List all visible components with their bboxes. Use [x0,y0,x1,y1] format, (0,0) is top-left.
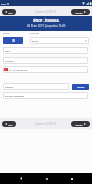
staticText: İsim [5,49,10,52]
button[interactable]: T.C. Kimlik No [3,66,88,73]
staticText: Soyisim [5,59,14,62]
staticText: 3:24 [1,2,6,5]
staticText: 28 [12,39,15,43]
staticText: Toplam: 120,00 TL [35,122,57,125]
staticText: Koltuk [3,31,11,34]
button[interactable]: Geri [2,9,16,15]
staticText: SİNOP - İSTANBUL [33,19,60,23]
button[interactable]: Erkek [30,37,89,44]
staticText: Telefon [5,85,14,88]
staticText: 04 Ekim 2019 Çarşamba 15:00 [27,24,66,28]
staticText: Erkek [32,39,39,42]
button[interactable]: Home [41,173,53,184]
button[interactable]: Geri [2,121,16,127]
staticText: Seçiniz [77,86,85,89]
staticText: T.C. Kimlik No [12,68,28,71]
button[interactable]: E-Posta adresiniz [3,92,88,99]
staticText: Toplam: 120,00 TL [35,10,57,13]
button[interactable]: Devam [71,121,90,127]
staticText: Geri [8,11,13,14]
staticText: Devam [75,123,83,126]
button[interactable]: 28 [3,37,23,44]
staticText: Cinsiyet [30,31,39,34]
button[interactable]: Recent apps [66,173,78,184]
button[interactable]: Soyisim [3,57,88,64]
button[interactable]: Back [15,173,27,184]
staticText: Geri [8,123,13,126]
button[interactable]: Devam [71,9,90,15]
staticText: E-Posta adresiniz [5,94,25,97]
button[interactable]: İsim [3,47,88,54]
button[interactable]: Seçiniz [72,84,89,90]
button[interactable]: Telefon [3,83,69,90]
staticText: Devam [75,11,83,14]
